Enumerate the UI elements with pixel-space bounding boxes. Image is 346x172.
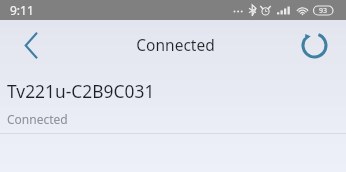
staticText: Connected bbox=[7, 111, 68, 127]
button[interactable]: Tv221u-C2B9C031 bbox=[0, 71, 346, 133]
button[interactable]: Back bbox=[0, 20, 61, 71]
staticText: Tv221u-C2B9C031 bbox=[7, 79, 155, 103]
staticText: Connected bbox=[136, 34, 215, 55]
staticText: 93 bbox=[319, 6, 328, 16]
button[interactable]: Refresh bbox=[283, 20, 346, 71]
staticText: 9:11 bbox=[10, 2, 34, 18]
